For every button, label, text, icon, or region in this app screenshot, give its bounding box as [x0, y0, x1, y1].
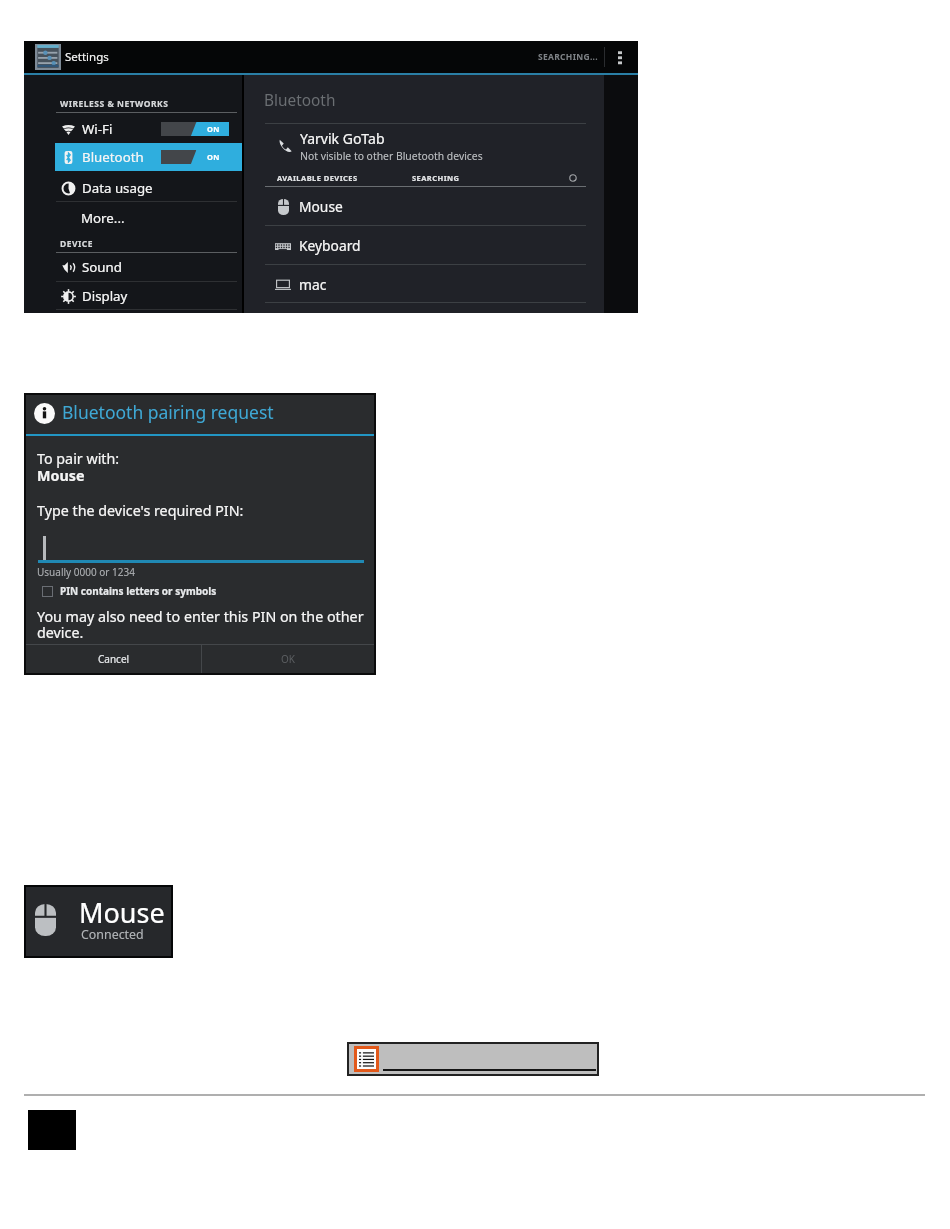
staticText: ON [207, 152, 220, 162]
button[interactable]: Display [24, 282, 242, 310]
button[interactable]: Wi-Fi [24, 115, 242, 143]
staticText: Mouse [37, 466, 85, 485]
staticText: You may also need to enter this PIN on t… [37, 607, 364, 626]
button[interactable]: Bluetooth [55, 143, 242, 171]
button[interactable]: More options [612, 46, 628, 68]
staticText: WIRELESS & NETWORKS [60, 98, 169, 110]
staticText: ON [207, 124, 220, 134]
staticText: Yarvik GoTab [300, 129, 385, 148]
staticText: Type the device's required PIN: [37, 501, 244, 520]
staticText: Usually 0000 or 1234 [37, 565, 135, 579]
staticText: Connected [81, 926, 144, 943]
button[interactable]: Sound [24, 253, 242, 281]
staticText: Bluetooth [264, 90, 336, 111]
button[interactable]: Cancel [26, 645, 201, 673]
staticText: AVAILABLE DEVICES [277, 173, 358, 183]
staticText: Display [82, 287, 128, 305]
staticText: device. [37, 623, 84, 642]
button[interactable]: PIN contains letters or symbols [42, 584, 217, 598]
staticText: Not visible to other Bluetooth devices [300, 149, 483, 163]
button[interactable]: Mouse [244, 188, 604, 225]
staticText: Bluetooth pairing request [62, 400, 274, 424]
staticText: Keyboard [299, 236, 361, 255]
staticText: Data usage [82, 179, 153, 197]
staticText: Sound [82, 258, 122, 276]
button[interactable]: mac [244, 266, 604, 303]
button[interactable]: Yarvik GoTab [244, 127, 604, 165]
button[interactable]: List view [354, 1046, 379, 1072]
staticText: OK [281, 652, 295, 666]
button[interactable]: More... [24, 203, 242, 232]
staticText: Bluetooth [82, 148, 144, 166]
staticText: Settings [65, 49, 109, 65]
button[interactable]: OK [202, 645, 374, 673]
staticText: DEVICE [60, 238, 94, 250]
staticText: Wi-Fi [82, 120, 113, 138]
staticText: Mouse [79, 894, 165, 931]
button[interactable]: Data usage [24, 174, 242, 202]
staticText: Cancel [98, 652, 130, 666]
staticText: PIN contains letters or symbols [60, 584, 217, 598]
staticText: More... [81, 209, 125, 227]
staticText: Mouse [299, 197, 343, 216]
staticText: SEARCHING... [538, 51, 598, 63]
staticText: SEARCHING [412, 173, 460, 183]
button[interactable]: Keyboard [244, 227, 604, 264]
staticText: To pair with: [37, 449, 120, 468]
staticText: mac [299, 275, 327, 294]
